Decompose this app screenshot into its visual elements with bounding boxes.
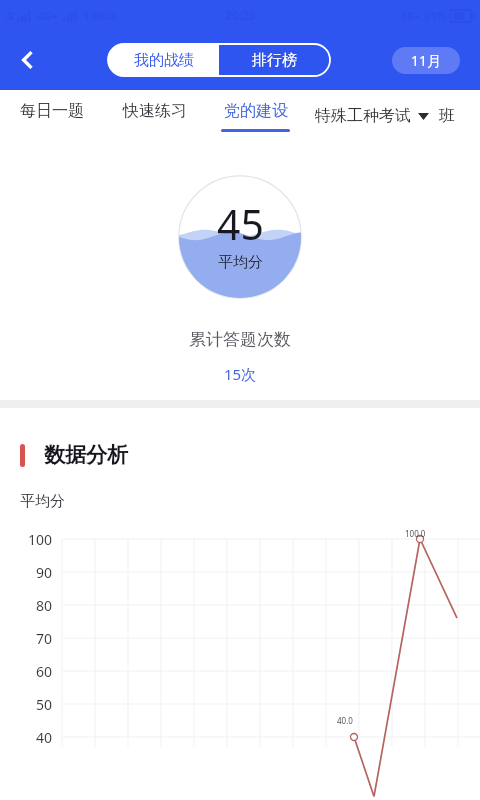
staticText: 90 bbox=[35, 563, 52, 582]
staticText: 快速练习 bbox=[123, 101, 187, 121]
staticText: 100.0 bbox=[405, 528, 426, 539]
staticText: 70 bbox=[35, 629, 52, 648]
staticText: 累计答题次数 bbox=[189, 329, 291, 350]
button[interactable]: 我的战绩 bbox=[108, 44, 219, 76]
staticText: 数据分析 bbox=[44, 442, 128, 468]
button[interactable]: Back bbox=[6, 38, 50, 82]
staticText: 每日一题 bbox=[20, 101, 84, 121]
button[interactable]: 快速练习 bbox=[104, 90, 206, 142]
staticText: 特殊工种考试 bbox=[315, 106, 411, 126]
button[interactable]: 班 bbox=[439, 90, 480, 142]
staticText: 平均分 bbox=[218, 253, 263, 272]
staticText: 50 bbox=[35, 695, 52, 714]
staticText: 平均分 bbox=[20, 492, 65, 511]
staticText: 60 bbox=[35, 662, 52, 681]
button[interactable]: 每日一题 bbox=[0, 90, 104, 142]
staticText: 排行榜 bbox=[252, 51, 297, 70]
staticText: 班 bbox=[439, 106, 455, 126]
staticText: 15次 bbox=[224, 364, 257, 384]
button[interactable]: 党的建设 bbox=[206, 90, 305, 142]
button[interactable]: 15次 bbox=[224, 364, 257, 384]
staticText: 11月 bbox=[411, 51, 442, 70]
button[interactable]: 11月 bbox=[392, 47, 460, 74]
staticText: 100 bbox=[27, 530, 52, 549]
staticText: 我的战绩 bbox=[134, 51, 194, 70]
staticText: 45 bbox=[217, 196, 264, 252]
button[interactable]: 特殊工种考试 bbox=[305, 90, 439, 142]
staticText: 40.0 bbox=[337, 715, 353, 726]
button[interactable]: 排行榜 bbox=[219, 44, 330, 76]
staticText: 40 bbox=[35, 728, 52, 747]
staticText: 80 bbox=[35, 596, 52, 615]
staticText: 党的建设 bbox=[224, 101, 288, 121]
